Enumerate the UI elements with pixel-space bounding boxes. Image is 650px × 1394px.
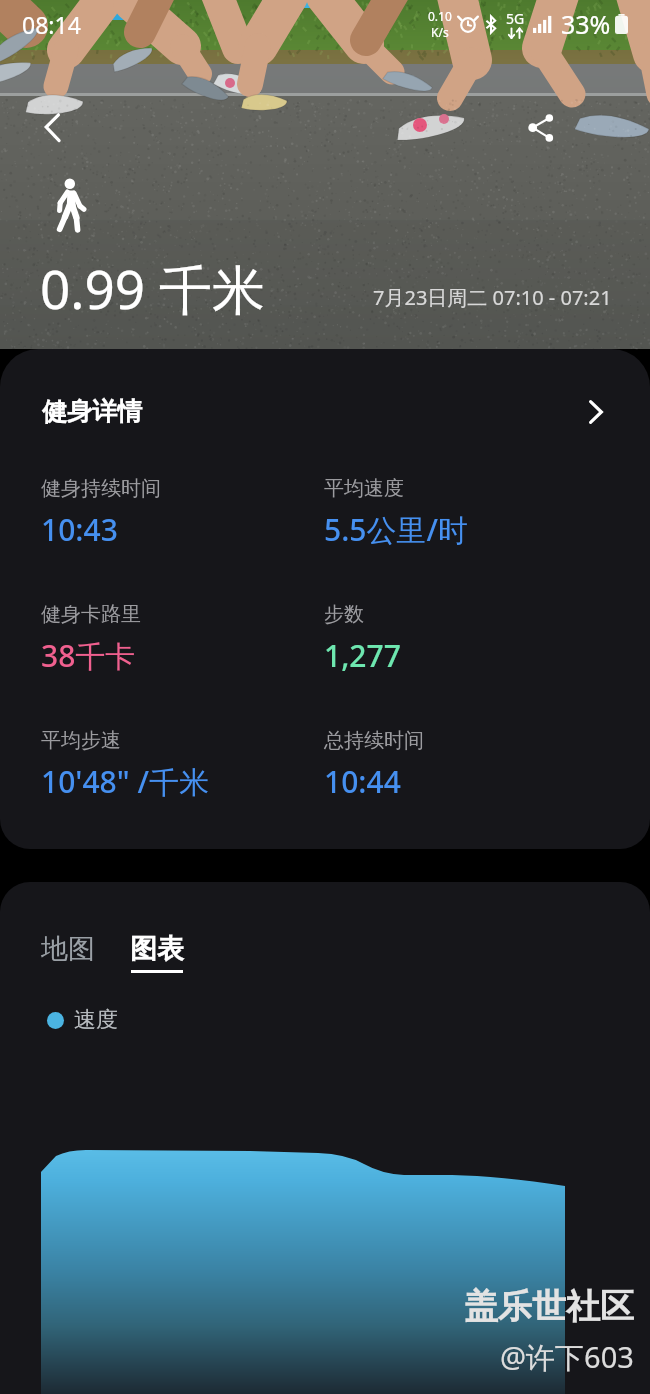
staticText: 速度 (74, 1006, 118, 1034)
button[interactable]: 地图 (41, 932, 95, 966)
staticText: 平均步速 (41, 728, 121, 753)
staticText: 步数 (324, 602, 364, 627)
staticText: 38千卡 (41, 635, 136, 676)
staticText: 5G (506, 9, 525, 28)
staticText: 10'48" /千米 (41, 761, 209, 802)
button[interactable]: 图表 (130, 932, 184, 973)
staticText: 平均速度 (324, 476, 404, 501)
staticText: 1,277 (324, 635, 401, 676)
staticText: 10:44 (324, 761, 401, 802)
staticText: 健身卡路里 (41, 602, 141, 627)
staticText: 0.10 (428, 8, 452, 24)
staticText: K/s (431, 24, 449, 40)
staticText: 7月23日周二 07:10 - 07:21 (373, 284, 612, 311)
button[interactable]: Share (514, 100, 568, 154)
staticText: 33% (561, 7, 611, 41)
staticText: 10:43 (41, 509, 118, 550)
staticText: 0.99 千米 (40, 252, 265, 324)
staticText: @许下603 (500, 1337, 634, 1377)
staticText: 5.5公里/时 (324, 509, 469, 550)
button[interactable]: 健身详情 (0, 349, 650, 469)
staticText: 图表 (130, 932, 184, 966)
staticText: 08:14 (22, 9, 81, 40)
button[interactable]: Back (26, 100, 80, 154)
staticText: 地图 (41, 932, 95, 966)
staticText: 健身持续时间 (41, 476, 161, 501)
staticText: 健身详情 (42, 396, 142, 427)
staticText: 总持续时间 (324, 728, 424, 753)
staticText: 盖乐世社区 (464, 1285, 634, 1328)
